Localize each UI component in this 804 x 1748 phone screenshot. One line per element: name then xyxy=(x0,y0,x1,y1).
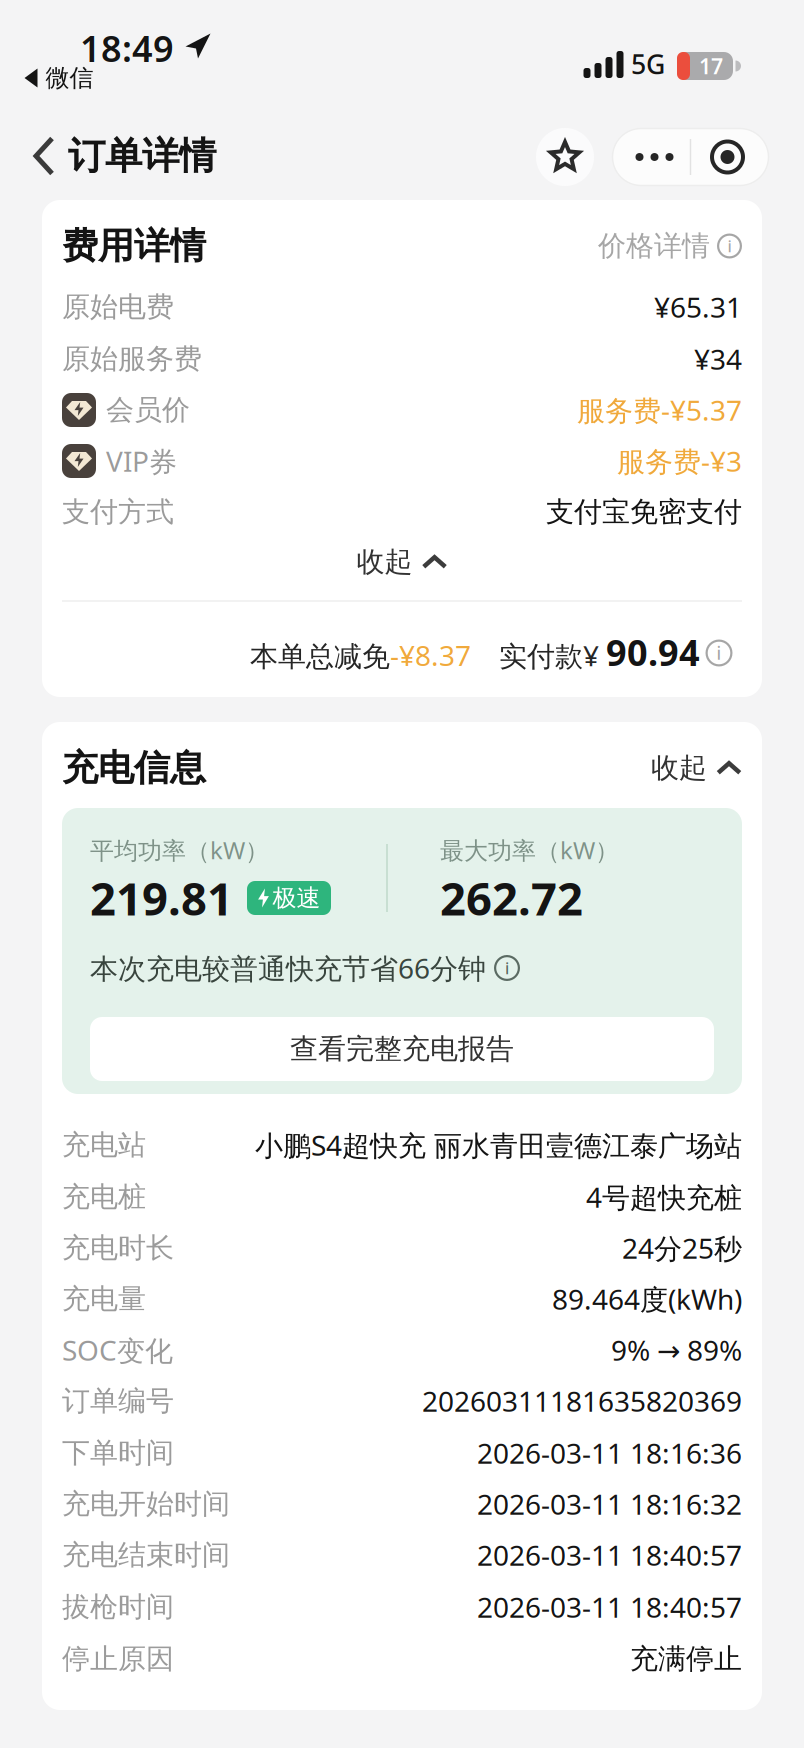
staticText: 服务费-¥5.37 xyxy=(577,391,742,429)
staticText: 2026-03-11 18:16:36 xyxy=(477,1434,742,1472)
staticText: 2026-03-11 18:40:57 xyxy=(477,1588,742,1626)
button[interactable]: 更多 xyxy=(619,128,689,186)
staticText: 充电量 xyxy=(62,1282,146,1316)
staticText: 5G xyxy=(631,46,665,82)
staticText: 9% → 89% xyxy=(611,1331,742,1369)
staticText: 18:49 xyxy=(80,24,174,72)
staticText: 4号超快充桩 xyxy=(586,1178,742,1216)
staticText: ¥34 xyxy=(694,340,742,378)
staticText: 262.72 xyxy=(440,868,583,928)
staticText: 17 xyxy=(699,52,723,80)
staticText: 最大功率（kW） xyxy=(440,834,619,866)
staticText: i xyxy=(505,957,509,979)
staticText: 20260311181635820369 xyxy=(422,1382,742,1420)
staticText: 订单编号 xyxy=(62,1384,174,1418)
staticText: 24分25秒 xyxy=(622,1229,742,1267)
staticText: 查看完整充电报告 xyxy=(290,1032,514,1066)
staticText: i xyxy=(727,235,731,257)
button[interactable]: 收起 xyxy=(356,545,447,579)
staticText xyxy=(700,636,707,674)
staticText: 小鹏S4超快充 丽水青田壹德江泰广场站 xyxy=(255,1126,742,1164)
button[interactable]: 收藏 xyxy=(536,128,594,186)
staticText: 充电结束时间 xyxy=(62,1538,230,1572)
staticText: i xyxy=(716,641,721,664)
staticText: 原始电费 xyxy=(62,290,174,324)
staticText: 充电信息 xyxy=(62,746,206,790)
staticText: VIP券 xyxy=(106,442,177,480)
staticText: 服务费-¥3 xyxy=(617,442,742,480)
staticText: 停止原因 xyxy=(62,1642,174,1676)
button[interactable]: 收起 xyxy=(651,751,742,785)
staticText: 价格详情 xyxy=(598,229,710,263)
staticText: 支付宝免密支付 xyxy=(546,495,742,529)
staticText: 订单详情 xyxy=(68,133,216,179)
staticText: SOC变化 xyxy=(62,1331,173,1369)
button[interactable]: 价格详情 xyxy=(598,229,742,263)
staticText: -¥8.37 xyxy=(390,636,471,674)
staticText: 90.94 xyxy=(606,628,700,676)
staticText: 原始服务费 xyxy=(62,342,202,376)
staticText: 收起 xyxy=(651,751,707,785)
staticText: 219.81 xyxy=(90,868,233,928)
staticText: 拔枪时间 xyxy=(62,1590,174,1624)
staticText: 费用详情 xyxy=(62,224,206,268)
staticText: 89.464度(kWh) xyxy=(552,1280,742,1318)
staticText: 微信 xyxy=(45,63,93,93)
staticText: 平均功率（kW） xyxy=(90,834,269,866)
staticText: 充满停止 xyxy=(630,1642,742,1676)
staticText: 充电时长 xyxy=(62,1231,174,1265)
staticText: 2026-03-11 18:16:32 xyxy=(477,1485,742,1523)
staticText: 充电站 xyxy=(62,1128,146,1162)
staticText: 本次充电较普通快充节省66分钟 xyxy=(90,949,486,987)
button[interactable]: 关闭 xyxy=(692,128,762,186)
staticText: 充电开始时间 xyxy=(62,1487,230,1521)
staticText: 充电桩 xyxy=(62,1180,146,1214)
staticText: 会员价 xyxy=(106,393,190,427)
button[interactable]: 返回微信 xyxy=(22,63,93,93)
button[interactable]: 查看完整充电报告 xyxy=(90,1017,714,1081)
button[interactable]: 返回 xyxy=(33,136,54,176)
staticText: 支付方式 xyxy=(62,495,174,529)
staticText: 下单时间 xyxy=(62,1436,174,1470)
staticText: ¥65.31 xyxy=(654,288,742,326)
staticText: 本单总减免 xyxy=(250,639,390,674)
staticText: 极速 xyxy=(272,883,320,913)
staticText: 2026-03-11 18:40:57 xyxy=(477,1536,742,1574)
staticText: 收起 xyxy=(356,545,412,579)
staticText: 实付款¥ xyxy=(471,637,606,674)
